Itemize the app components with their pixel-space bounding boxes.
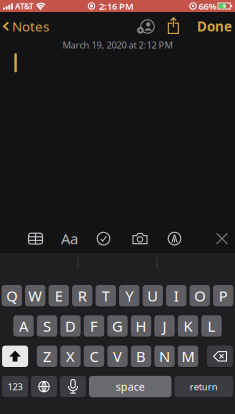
button[interactable]: G xyxy=(107,315,128,337)
button[interactable]: Back xyxy=(3,18,49,34)
staticText: Z xyxy=(43,347,51,366)
button[interactable]: L xyxy=(201,315,222,337)
button[interactable]: space xyxy=(89,376,171,397)
staticText: Done xyxy=(197,17,232,35)
staticText: K xyxy=(183,316,192,336)
button[interactable]: D xyxy=(60,315,81,337)
button[interactable]: Format xyxy=(61,229,78,248)
button[interactable]: Done xyxy=(197,17,232,35)
staticText: P xyxy=(219,286,228,305)
button[interactable]: Insert Photo xyxy=(132,232,148,245)
staticText: J xyxy=(162,316,166,336)
button[interactable]: Delete xyxy=(207,346,233,367)
staticText: R xyxy=(78,286,87,305)
staticText: 123 xyxy=(7,380,22,393)
button[interactable]: W xyxy=(25,285,45,306)
staticText: space xyxy=(116,379,145,394)
button[interactable]: N xyxy=(154,346,175,367)
staticText: Notes xyxy=(12,17,49,35)
button[interactable]: A xyxy=(13,315,34,337)
staticText: Aa xyxy=(61,229,78,248)
staticText: G xyxy=(112,316,123,336)
button[interactable]: 123 xyxy=(2,376,28,397)
staticText: 66% xyxy=(198,0,216,12)
staticText: M xyxy=(181,347,194,366)
staticText: E xyxy=(55,286,63,305)
button[interactable]: Y xyxy=(119,285,139,306)
staticText: L xyxy=(207,316,215,336)
button[interactable]: P xyxy=(213,285,233,306)
button[interactable]: Next Keyboard xyxy=(31,376,57,397)
staticText: D xyxy=(65,316,76,336)
staticText: X xyxy=(66,347,75,366)
button[interactable]: I xyxy=(166,285,186,306)
button[interactable]: Dictate xyxy=(60,376,86,397)
staticText: H xyxy=(135,316,146,336)
button[interactable]: return xyxy=(174,376,233,397)
button[interactable]: Share xyxy=(168,17,179,34)
staticText: T xyxy=(102,286,110,305)
button[interactable]: R xyxy=(72,285,92,306)
staticText: I xyxy=(174,286,179,305)
button[interactable]: Markup xyxy=(167,232,181,246)
button[interactable]: E xyxy=(48,285,69,306)
staticText: return xyxy=(190,380,218,393)
staticText: A xyxy=(19,316,28,336)
button[interactable]: T xyxy=(95,285,116,306)
button[interactable]: Add People xyxy=(137,19,155,34)
button[interactable]: H xyxy=(131,315,151,337)
button[interactable]: Q xyxy=(1,285,22,306)
button[interactable]: K xyxy=(178,315,198,337)
button[interactable]: S xyxy=(37,315,57,337)
button[interactable]: Shift xyxy=(2,346,28,367)
staticText: B xyxy=(136,347,146,366)
staticText: F xyxy=(90,316,98,336)
button[interactable]: Insert Table xyxy=(28,233,42,245)
staticText: S xyxy=(43,316,51,336)
staticText: U xyxy=(147,286,158,305)
button[interactable]: O xyxy=(189,285,210,306)
button[interactable]: Dismiss Keyboard xyxy=(216,232,228,245)
button[interactable]: M xyxy=(178,346,198,367)
button[interactable]: C xyxy=(84,346,104,367)
staticText: March 19, 2020 at 2:12 PM xyxy=(62,39,172,51)
button[interactable]: U xyxy=(142,285,163,306)
staticText: 2:16 PM xyxy=(99,0,134,12)
staticText: O xyxy=(194,286,205,305)
button[interactable]: J xyxy=(154,315,175,337)
staticText: N xyxy=(159,347,170,366)
staticText: C xyxy=(89,347,98,366)
button[interactable]: X xyxy=(60,346,81,367)
button[interactable]: V xyxy=(107,346,128,367)
button[interactable]: B xyxy=(131,346,151,367)
button[interactable]: Z xyxy=(37,346,57,367)
button[interactable]: F xyxy=(84,315,104,337)
staticText: W xyxy=(28,286,42,305)
staticText: Y xyxy=(125,286,133,305)
staticText: Q xyxy=(6,286,17,305)
button[interactable]: Checklist xyxy=(96,232,110,246)
staticText: V xyxy=(113,347,122,366)
staticText: AT&T xyxy=(15,1,34,11)
